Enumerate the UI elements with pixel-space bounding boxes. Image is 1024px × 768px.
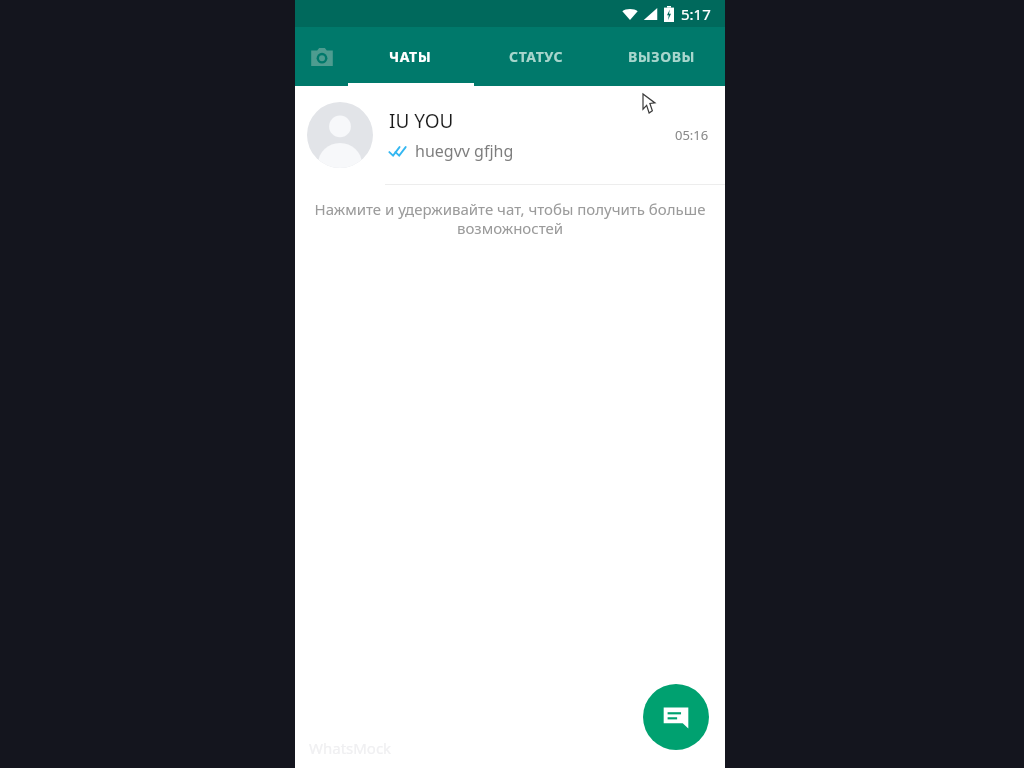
button[interactable]: СТАТУС bbox=[473, 27, 599, 86]
staticText: СТАТУС bbox=[509, 47, 564, 66]
staticText: 05:16 bbox=[675, 126, 709, 144]
button[interactable]: ВЫЗОВЫ bbox=[599, 27, 725, 86]
staticText: Нажмите и удерживайте чат, чтобы получит… bbox=[313, 199, 707, 238]
button[interactable]: New chat bbox=[643, 684, 709, 750]
staticText: ВЫЗОВЫ bbox=[628, 47, 696, 66]
staticText: IU YOU bbox=[389, 108, 454, 134]
staticText: huegvv gfjhg bbox=[415, 140, 514, 162]
staticText: 5:17 bbox=[681, 4, 711, 24]
button[interactable]: ЧАТЫ bbox=[348, 27, 473, 86]
staticText: ЧАТЫ bbox=[389, 47, 432, 66]
button[interactable]: IU YOU bbox=[295, 86, 725, 184]
button[interactable]: Camera bbox=[295, 27, 348, 86]
staticText: WhatsMock bbox=[309, 738, 392, 758]
